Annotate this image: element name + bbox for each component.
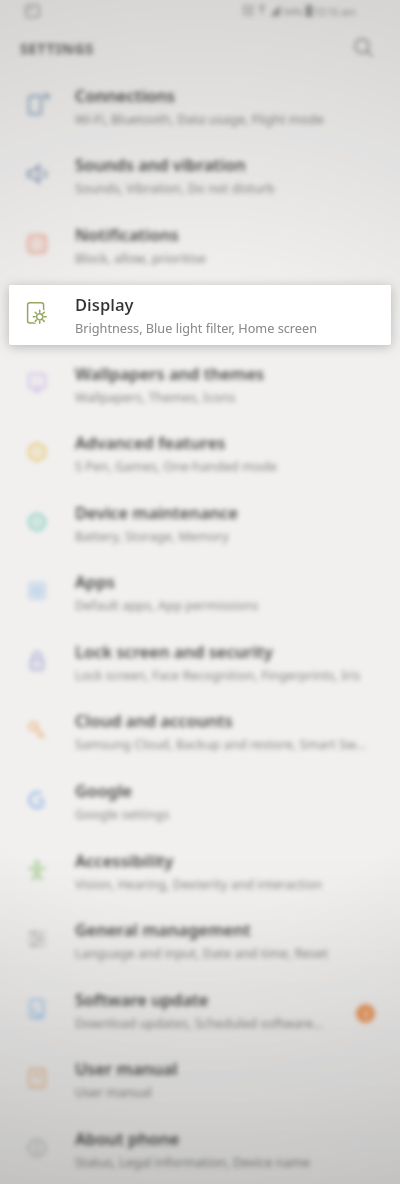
staticText: 1	[363, 1007, 370, 1022]
staticText: Wallpapers and themes	[75, 362, 265, 384]
staticText: Apps	[75, 570, 115, 592]
button[interactable]: Advanced features	[0, 423, 400, 493]
staticText: Software update	[75, 988, 209, 1010]
button[interactable]	[352, 36, 376, 60]
button[interactable]: About phone	[0, 1119, 400, 1184]
staticText: Status, Legal information, Device name	[75, 1153, 311, 1170]
button[interactable]: Google	[0, 771, 400, 841]
button[interactable]: User manual	[0, 1049, 400, 1119]
staticText: Accessibility	[75, 849, 174, 871]
button[interactable]: Accessibility	[0, 841, 400, 911]
staticText: Block, allow, prioritise	[75, 249, 206, 266]
button[interactable]: General management	[0, 910, 400, 980]
staticText: Sounds, Vibration, Do not disturb	[75, 179, 275, 196]
staticText: Brightness, Blue light filter, Home scre…	[75, 319, 317, 336]
button[interactable]: Notifications	[0, 215, 400, 285]
staticText: Vision, Hearing, Dexterity and interacti…	[75, 875, 323, 892]
staticText: SETTINGS	[20, 38, 94, 58]
staticText: Lock screen, Face Recognition, Fingerpri…	[75, 666, 361, 683]
staticText: User manual	[75, 1083, 152, 1100]
staticText: Samsung Cloud, Backup and restore, Smart…	[75, 735, 366, 752]
button[interactable]: Display	[0, 284, 400, 354]
button[interactable]: Cloud and accounts	[0, 701, 400, 771]
button[interactable]: Connections	[0, 76, 400, 146]
staticText: Default apps, App permissions	[75, 596, 259, 613]
button[interactable]: Device maintenance	[0, 493, 400, 563]
staticText: Google	[75, 779, 132, 801]
staticText: Google settings	[75, 805, 170, 822]
staticText: Device maintenance	[75, 501, 239, 523]
button[interactable]: Apps	[0, 562, 400, 632]
button[interactable]: Display	[9, 285, 391, 345]
staticText: Download updates, Scheduled software...	[75, 1014, 324, 1031]
staticText: Display	[75, 292, 134, 314]
staticText: 94%	[283, 5, 303, 19]
staticText: Advanced features	[75, 431, 226, 453]
staticText: Notifications	[75, 223, 179, 245]
button[interactable]: Lock screen and security	[0, 632, 400, 702]
staticText: Battery, Storage, Memory	[75, 527, 229, 544]
staticText: Brightness, Blue light filter, Home scre…	[75, 318, 320, 335]
staticText: Language and input, Date and time, Reset	[75, 944, 328, 961]
staticText: Wallpapers, Themes, Icons	[75, 388, 236, 405]
button[interactable]: Sounds and vibration	[0, 145, 400, 215]
staticText: General management	[75, 918, 251, 940]
staticText: S Pen, Games, One-handed mode	[75, 457, 277, 474]
staticText: Lock screen and security	[75, 640, 273, 662]
staticText: Display	[75, 293, 134, 315]
staticText: Cloud and accounts	[75, 709, 233, 731]
staticText: Wi-Fi, Bluetooth, Data usage, Flight mod…	[75, 110, 324, 127]
button[interactable]: Wallpapers and themes	[0, 354, 400, 424]
staticText: About phone	[75, 1127, 180, 1149]
staticText: User manual	[75, 1057, 178, 1079]
button[interactable]: Software update	[0, 980, 400, 1050]
staticText: 10:16 am	[314, 5, 356, 19]
staticText: Sounds and vibration	[75, 153, 246, 175]
staticText: Connections	[75, 84, 175, 106]
